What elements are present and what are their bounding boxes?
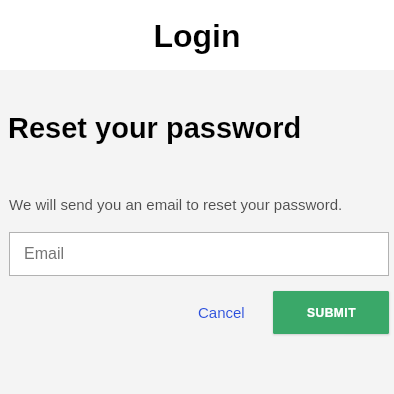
staticText: We will send you an email to reset your … [9, 196, 343, 213]
button[interactable]: SUBMIT [273, 291, 389, 334]
staticText: Email [24, 245, 65, 263]
staticText: SUBMIT [307, 306, 356, 319]
button[interactable]: Email address input [9, 232, 389, 276]
staticText: Cancel [198, 304, 245, 321]
button[interactable]: Cancel [183, 291, 259, 333]
staticText: Login [0, 18, 394, 54]
staticText: Reset your password [8, 112, 302, 144]
